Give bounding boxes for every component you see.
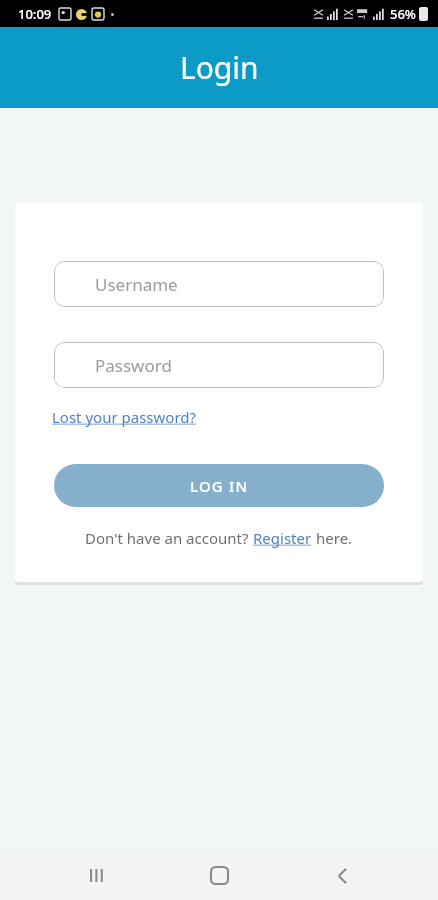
button[interactable]: Recent apps <box>68 851 124 900</box>
staticText: Register <box>253 528 316 548</box>
button[interactable]: Back <box>315 851 371 900</box>
staticText: Don't have an account? <box>85 528 253 548</box>
button[interactable]: Lost your password? <box>52 404 197 430</box>
staticText: Password <box>95 354 172 377</box>
staticText: LOG IN <box>190 476 249 496</box>
staticText: Lost your password? <box>52 407 197 427</box>
button[interactable]: Username <box>54 261 384 307</box>
staticText: here. <box>316 528 353 548</box>
button[interactable]: Register <box>253 528 316 548</box>
staticText: 56% <box>390 5 416 23</box>
staticText: 10:09 <box>18 5 52 23</box>
button[interactable]: LOG IN <box>54 464 384 507</box>
staticText: Username <box>95 273 178 296</box>
staticText: Login <box>180 47 259 88</box>
button[interactable]: Password <box>54 342 384 388</box>
button[interactable]: Home <box>191 851 247 900</box>
